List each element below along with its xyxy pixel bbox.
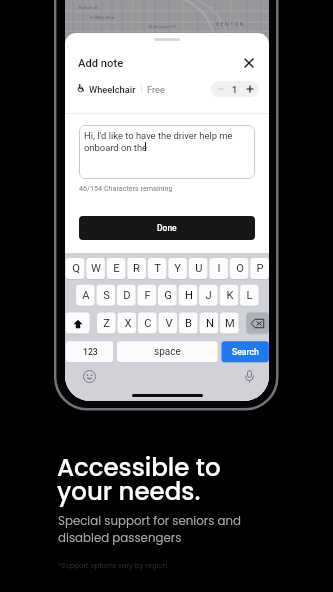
staticText: T <box>154 262 161 275</box>
staticText: N Hunt St <box>79 5 98 10</box>
button[interactable]: Close <box>240 54 258 72</box>
button[interactable]: Q <box>66 258 85 279</box>
button[interactable]: Dictate <box>240 367 258 385</box>
button[interactable]: Search <box>222 341 269 362</box>
staticText: S <box>103 289 110 302</box>
button[interactable]: Increase <box>242 81 257 97</box>
staticText: H <box>185 289 193 302</box>
button[interactable]: R <box>127 258 146 279</box>
staticText: N Arlington Pl <box>149 24 176 29</box>
button[interactable]: A <box>76 285 95 306</box>
staticText: *Support options vary by region <box>58 561 168 571</box>
staticText: K E N T O N <box>216 21 244 27</box>
staticText: N Willis Blvd <box>90 15 115 20</box>
button[interactable]: L <box>240 285 259 306</box>
button[interactable]: B <box>179 313 198 334</box>
button[interactable]: N <box>200 313 219 334</box>
staticText: space <box>154 346 181 358</box>
button[interactable]: Hi, I'd like to have the driver help me … <box>79 125 255 179</box>
staticText: U <box>195 262 203 275</box>
staticText: J <box>205 289 212 302</box>
staticText: 46/154 Characters remaining <box>79 184 173 192</box>
staticText: K <box>226 289 234 302</box>
button[interactable]: C <box>138 313 157 334</box>
staticText: Special support for seniors and disabled… <box>58 513 242 546</box>
button[interactable]: D <box>117 285 136 306</box>
button[interactable]: J <box>199 285 218 306</box>
button[interactable]: S <box>97 285 116 306</box>
staticText: X <box>124 317 132 330</box>
staticText: Search <box>232 347 259 357</box>
staticText: Z <box>103 317 110 330</box>
button[interactable]: O <box>230 258 249 279</box>
staticText: Wheelchair <box>89 84 136 95</box>
button[interactable]: G <box>158 285 177 306</box>
button[interactable]: Y <box>168 258 187 279</box>
staticText: E <box>113 262 120 275</box>
button[interactable]: Backspace <box>246 313 269 334</box>
button[interactable]: W <box>86 258 105 279</box>
button[interactable]: Decrease <box>213 81 228 97</box>
button[interactable]: K <box>220 285 239 306</box>
staticText: R <box>133 262 140 275</box>
button[interactable]: Shift <box>66 313 90 334</box>
staticText: Hi, I'd like to have the driver help me … <box>84 130 233 153</box>
button[interactable]: V <box>159 313 178 334</box>
staticText: Accessible to your needs. <box>57 450 221 509</box>
staticText: Free <box>147 84 165 95</box>
staticText: Y <box>174 262 181 275</box>
staticText: Done <box>157 223 177 233</box>
staticText: Add note <box>78 57 124 70</box>
button[interactable]: Emoji <box>80 367 98 385</box>
button[interactable]: X <box>118 313 137 334</box>
button[interactable]: M <box>220 313 239 334</box>
staticText: N <box>206 317 214 330</box>
staticText: M <box>225 317 235 330</box>
button[interactable]: Done <box>79 216 255 240</box>
button[interactable]: T <box>148 258 167 279</box>
button[interactable]: E <box>107 258 126 279</box>
staticText: C <box>144 317 152 330</box>
button[interactable]: Z <box>97 313 116 334</box>
button[interactable]: F <box>138 285 157 306</box>
staticText: P <box>256 262 264 275</box>
staticText: B <box>185 317 192 330</box>
button[interactable]: P <box>250 258 269 279</box>
staticText: A <box>82 289 90 302</box>
staticText: L <box>246 289 253 302</box>
staticText: I <box>217 262 221 275</box>
staticText: 123 <box>83 347 98 357</box>
staticText: V <box>165 317 173 330</box>
staticText: D <box>123 289 131 302</box>
staticText: F <box>144 289 151 302</box>
button[interactable]: space <box>117 341 218 362</box>
button[interactable]: U <box>189 258 208 279</box>
staticText: Q <box>72 262 80 275</box>
button[interactable]: H <box>179 285 198 306</box>
staticText: W <box>91 262 101 275</box>
button[interactable]: I <box>209 258 228 279</box>
staticText: G <box>164 289 172 302</box>
staticText: 1 <box>232 84 238 95</box>
button[interactable]: 123 <box>66 341 114 362</box>
staticText: O <box>236 262 244 275</box>
